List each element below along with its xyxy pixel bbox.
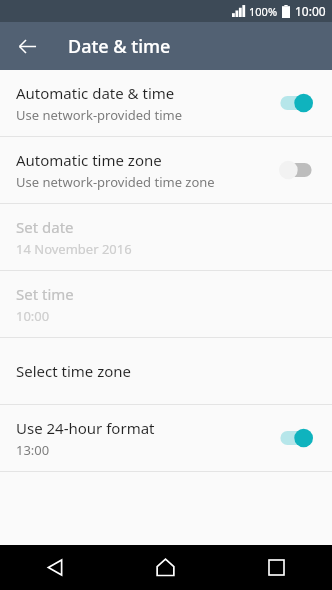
staticText: Automatic time zone [16,150,162,170]
staticText: 14 November 2016 [16,240,132,258]
button[interactable]: Back [0,545,110,590]
staticText: Date & time [68,34,171,59]
button[interactable]: Set date [0,204,332,270]
button[interactable]: Use 24-hour format [0,405,332,471]
button[interactable]: Set time [0,271,332,337]
button[interactable]: Toggle on [276,425,316,451]
staticText: Use network-provided time [16,106,182,124]
staticText: Set time [16,284,74,304]
button[interactable]: Back [8,27,46,65]
staticText: 10:00 [16,307,50,325]
button[interactable]: Automatic time zone [0,137,332,203]
staticText: Set date [16,217,74,237]
staticText: Use 24-hour format [16,418,155,438]
staticText: 10:00 [295,3,326,19]
button[interactable]: Home [110,545,221,590]
button[interactable]: Select time zone [0,338,332,404]
staticText: 100% [249,4,278,19]
button[interactable]: Automatic date & time [0,70,332,136]
staticText: 13:00 [16,441,50,459]
staticText: Use network-provided time zone [16,173,215,191]
button[interactable]: Recent apps [221,545,332,590]
button[interactable]: Toggle on [276,90,316,116]
staticText: Automatic date & time [16,83,175,103]
staticText: Select time zone [16,361,132,381]
button[interactable]: Toggle off [276,157,316,183]
